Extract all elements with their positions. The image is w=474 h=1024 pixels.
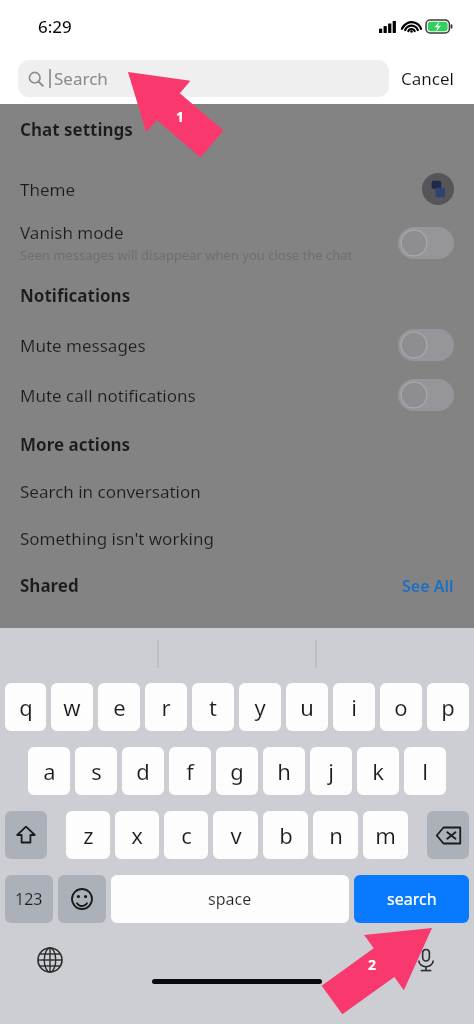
button[interactable]: i xyxy=(333,683,375,731)
staticText: r xyxy=(161,692,171,722)
button[interactable]: Search xyxy=(18,60,389,97)
staticText: b xyxy=(279,820,293,850)
staticText: Notifications xyxy=(20,284,131,307)
button[interactable]: g xyxy=(216,747,258,795)
staticText: t xyxy=(209,692,217,722)
button[interactable]: space xyxy=(111,875,349,923)
staticText: h xyxy=(277,756,291,786)
staticText: m xyxy=(375,820,396,850)
button[interactable]: Backspace xyxy=(427,811,469,859)
staticText: g xyxy=(230,756,244,786)
button[interactable]: f xyxy=(169,747,211,795)
button[interactable]: x xyxy=(115,811,159,859)
staticText: Cancel xyxy=(401,67,454,90)
staticText: c xyxy=(181,820,192,850)
staticText: y xyxy=(254,692,266,722)
staticText: Something isn't working xyxy=(20,527,214,550)
button[interactable]: s xyxy=(75,747,117,795)
button[interactable]: d xyxy=(122,747,164,795)
staticText: u xyxy=(300,692,314,722)
staticText: Vanish mode xyxy=(20,221,124,244)
button[interactable]: y xyxy=(239,683,281,731)
staticText: Chat settings xyxy=(20,118,133,141)
button[interactable]: k xyxy=(357,747,399,795)
button[interactable]: Theme xyxy=(0,167,474,211)
staticText: 1 xyxy=(176,107,185,126)
button[interactable]: m xyxy=(363,811,408,859)
staticText: s xyxy=(91,756,102,786)
button[interactable]: Mute call notifications xyxy=(0,379,474,411)
staticText: space xyxy=(208,888,252,910)
staticText: 2 xyxy=(368,955,377,974)
staticText: Search xyxy=(54,67,108,90)
button[interactable]: n xyxy=(313,811,358,859)
staticText: j xyxy=(328,756,334,786)
button[interactable]: Emoji xyxy=(58,875,106,923)
button[interactable]: h xyxy=(263,747,305,795)
staticText: Shared xyxy=(20,574,79,597)
button[interactable]: Vanish mode xyxy=(0,221,474,264)
button[interactable]: r xyxy=(145,683,187,731)
staticText: a xyxy=(43,756,56,786)
button[interactable]: u xyxy=(286,683,328,731)
button[interactable]: Shift xyxy=(5,811,47,859)
button[interactable]: b xyxy=(263,811,308,859)
staticText: Theme xyxy=(20,178,76,201)
button[interactable]: o xyxy=(380,683,422,731)
staticText: See All xyxy=(402,575,454,597)
button[interactable]: search xyxy=(354,875,469,923)
button[interactable]: c xyxy=(164,811,208,859)
staticText: Search in conversation xyxy=(20,480,201,503)
staticText: i xyxy=(351,692,357,722)
button[interactable]: Cancel xyxy=(389,60,456,97)
button[interactable]: Search in conversation xyxy=(0,480,474,503)
button[interactable]: Something isn't working xyxy=(0,527,474,550)
staticText: Mute messages xyxy=(20,334,146,357)
staticText: q xyxy=(19,692,33,722)
button[interactable]: 123 xyxy=(5,875,53,923)
button[interactable]: Mute messages xyxy=(0,329,474,361)
button[interactable]: Shared xyxy=(0,574,474,597)
staticText: w xyxy=(63,692,81,722)
staticText: 6:29 xyxy=(38,15,72,38)
button[interactable]: Dictate xyxy=(408,942,444,978)
staticText: v xyxy=(230,820,242,850)
staticText: p xyxy=(441,692,455,722)
staticText: f xyxy=(186,756,194,786)
staticText: x xyxy=(131,820,143,850)
staticText: z xyxy=(83,820,94,850)
button[interactable]: a xyxy=(28,747,70,795)
button[interactable]: e xyxy=(98,683,140,731)
button[interactable]: l xyxy=(404,747,446,795)
staticText: o xyxy=(394,692,408,722)
staticText: 123 xyxy=(15,888,43,910)
staticText: Seen messages will disappear when you cl… xyxy=(20,246,353,264)
button[interactable]: p xyxy=(427,683,469,731)
staticText: search xyxy=(387,888,437,910)
staticText: d xyxy=(136,756,150,786)
button[interactable]: Toggle xyxy=(398,329,454,361)
staticText: Mute call notifications xyxy=(20,384,196,407)
button[interactable]: Toggle xyxy=(398,227,454,259)
button[interactable]: w xyxy=(51,683,93,731)
button[interactable]: z xyxy=(66,811,110,859)
button[interactable]: Toggle xyxy=(398,379,454,411)
button[interactable]: Change keyboard language xyxy=(32,942,68,978)
staticText: e xyxy=(113,692,126,722)
staticText: n xyxy=(329,820,343,850)
button[interactable]: t xyxy=(192,683,234,731)
button[interactable]: j xyxy=(310,747,352,795)
staticText: More actions xyxy=(20,433,131,456)
staticText: k xyxy=(372,756,384,786)
staticText: l xyxy=(422,756,428,786)
button[interactable]: v xyxy=(213,811,258,859)
button[interactable]: q xyxy=(5,683,46,731)
